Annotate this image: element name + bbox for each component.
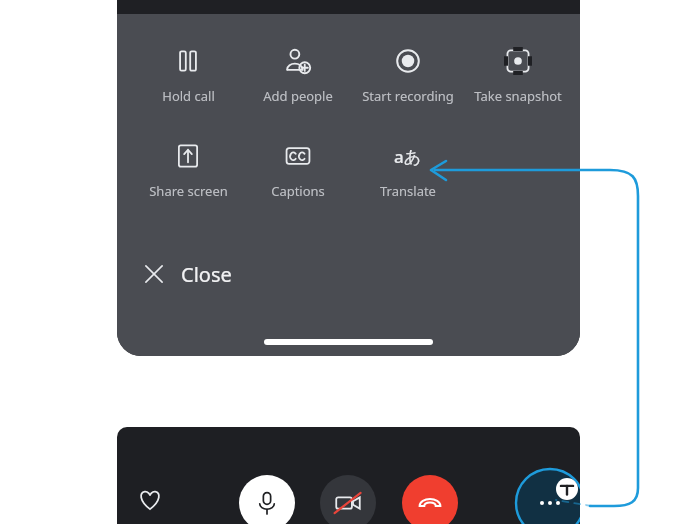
button[interactable]: Share screen [133, 139, 243, 200]
staticText: Start recording [362, 87, 454, 105]
button[interactable]: Take snapshot [463, 44, 573, 105]
staticText: Translate [380, 182, 436, 200]
staticText: Take snapshot [474, 87, 562, 105]
button[interactable]: React [126, 476, 174, 524]
button[interactable]: Turn on camera [320, 475, 376, 524]
staticText: Add people [263, 87, 333, 105]
staticText: aあ [394, 145, 422, 168]
staticText: Close [181, 261, 232, 288]
staticText: Share screen [149, 182, 228, 200]
button[interactable]: Captions [243, 139, 353, 200]
button[interactable]: Add people [243, 44, 353, 105]
button[interactable]: More options [514, 467, 580, 524]
button[interactable]: Mute microphone [239, 475, 295, 524]
staticText: Captions [271, 182, 325, 200]
button[interactable]: End call [402, 475, 458, 524]
button[interactable]: Hold call [133, 44, 243, 105]
staticText: Hold call [162, 87, 215, 105]
button[interactable]: aあ [353, 139, 463, 200]
button[interactable]: Close [117, 248, 580, 300]
button[interactable]: Start recording [353, 44, 463, 105]
